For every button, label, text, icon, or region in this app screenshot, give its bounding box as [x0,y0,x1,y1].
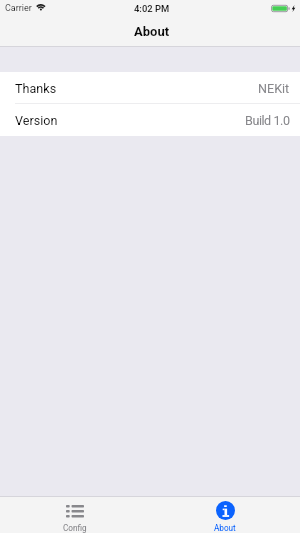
staticText: About [134,24,170,39]
staticText: Version [15,113,58,128]
staticText: Carrier [5,3,32,14]
staticText: Thanks [15,81,57,96]
staticText: 4:02 PM [134,3,170,14]
button[interactable]: About [150,497,300,533]
staticText: NEKit [258,81,290,96]
button[interactable]: Config [0,497,150,533]
button[interactable]: Thanks [0,72,300,104]
staticText: Config [63,523,87,533]
button[interactable]: Version [0,104,300,136]
staticText: Build 1.0 [245,113,290,128]
staticText: About [214,523,236,533]
